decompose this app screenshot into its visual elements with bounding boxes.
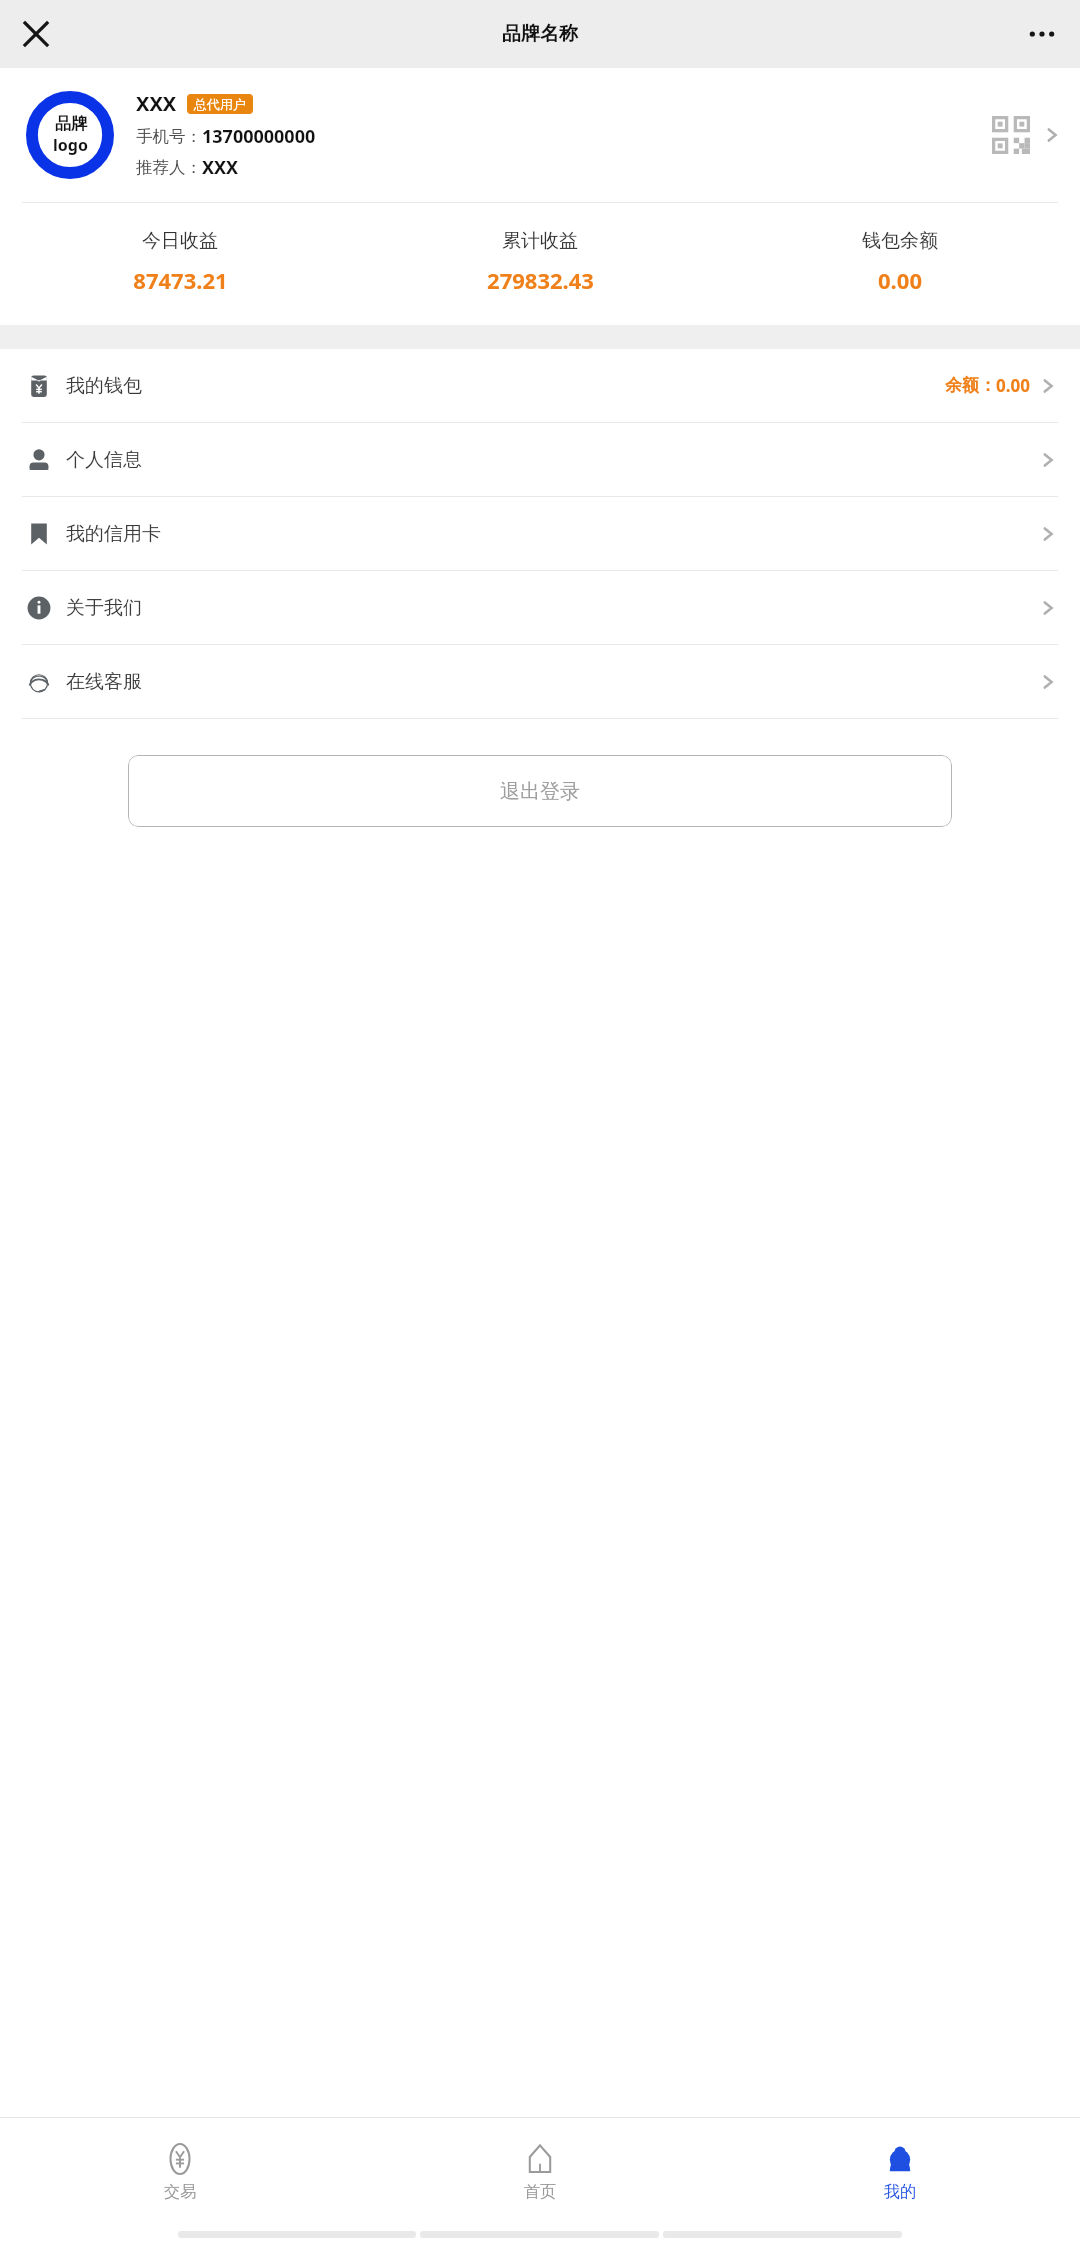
button[interactable]: 交易 xyxy=(0,2118,360,2226)
staticText: 我的钱包 xyxy=(66,374,142,398)
button[interactable]: 今日收益 xyxy=(0,229,360,295)
staticText: 今日收益 xyxy=(142,229,218,253)
button[interactable]: 首页 xyxy=(360,2118,720,2226)
button[interactable]: 钱包余额 xyxy=(720,229,1080,295)
staticText: 我的信用卡 xyxy=(66,522,161,546)
staticText: 279832.43 xyxy=(487,265,594,295)
button[interactable]: 个人信息 xyxy=(0,423,1080,496)
staticText: 退出登录 xyxy=(500,779,580,804)
button[interactable]: 品牌 xyxy=(0,68,1080,202)
button[interactable]: 关于我们 xyxy=(0,571,1080,644)
button[interactable]: 我的钱包 xyxy=(0,349,1080,422)
staticText: 0.00 xyxy=(996,374,1030,397)
staticText: 87473.21 xyxy=(133,265,228,295)
staticText: 总代用户 xyxy=(194,96,246,112)
staticText: 在线客服 xyxy=(66,670,142,694)
staticText: 钱包余额 xyxy=(862,229,938,253)
button[interactable]: 我的 xyxy=(720,2118,1080,2226)
staticText: 余额： xyxy=(945,375,996,396)
button[interactable]: More options xyxy=(1018,10,1066,58)
staticText: logo xyxy=(53,134,88,156)
staticText: 个人信息 xyxy=(66,448,142,472)
staticText: 首页 xyxy=(524,2182,556,2202)
button[interactable]: 在线客服 xyxy=(0,645,1080,718)
staticText: 交易 xyxy=(164,2182,196,2202)
staticText: 推荐人： xyxy=(136,157,202,178)
staticText: XXX xyxy=(136,90,177,117)
button[interactable]: 累计收益 xyxy=(360,229,720,295)
staticText: 0.00 xyxy=(878,265,922,295)
button[interactable]: 我的信用卡 xyxy=(0,497,1080,570)
staticText: 累计收益 xyxy=(502,229,578,253)
button[interactable]: Close xyxy=(12,10,60,58)
staticText: 13700000000 xyxy=(202,124,316,149)
staticText: 品牌名称 xyxy=(502,22,578,46)
other: QR code xyxy=(992,116,1030,154)
staticText: 手机号： xyxy=(136,126,202,147)
button[interactable]: 退出登录 xyxy=(128,755,952,827)
staticText: 我的 xyxy=(884,2182,916,2202)
staticText: 关于我们 xyxy=(66,596,142,620)
staticText: XXX xyxy=(202,155,239,180)
staticText: 品牌 xyxy=(55,114,87,134)
